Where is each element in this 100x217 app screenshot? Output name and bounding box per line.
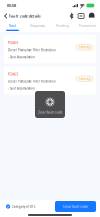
button[interactable]: Clear fault code <box>55 201 96 212</box>
button[interactable]: Permanent <box>75 21 100 32</box>
staticText: Pending <box>56 24 69 28</box>
staticText: Diesel Particulate Filter Restriction <box>8 80 56 83</box>
staticText: 05:58 <box>7 3 16 8</box>
button[interactable]: P2463 <box>4 35 96 63</box>
staticText: Clear fault code <box>37 110 62 114</box>
staticText: Total <box>9 24 16 28</box>
button[interactable]: Diagnostic <box>25 21 50 32</box>
staticText: Fault code details <box>9 13 41 19</box>
button[interactable]: Connector <box>87 13 96 19</box>
staticText: Diagnostic <box>30 24 45 28</box>
staticText: Pending <box>79 77 91 80</box>
button[interactable]: Device <box>77 13 85 19</box>
staticText: Permanent <box>79 24 96 28</box>
staticText: P2463 <box>8 40 18 45</box>
staticText: Clear fault code <box>63 204 88 209</box>
staticText: Category of DTC <box>12 204 36 208</box>
staticText: - Soot Accumulation <box>8 87 35 90</box>
button[interactable]: Total <box>0 21 25 32</box>
staticText: - Soot Accumulation <box>8 55 35 59</box>
staticText: P2463 <box>8 71 18 76</box>
button[interactable]: Bluetooth <box>68 13 75 19</box>
staticText: Diesel Particulate Filter Restriction <box>8 48 56 52</box>
button[interactable]: P2463 <box>4 66 96 95</box>
button[interactable]: Category of DTC <box>6 203 38 210</box>
staticText: Pending <box>79 46 91 49</box>
button[interactable]: Fault code details <box>4 11 43 21</box>
button[interactable]: Pending <box>50 21 75 32</box>
